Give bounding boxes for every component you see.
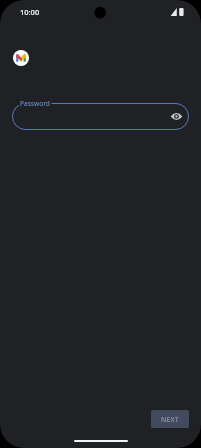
button[interactable]: Show password xyxy=(169,109,184,124)
staticText: 10:00 xyxy=(20,7,40,17)
staticText: Password xyxy=(20,99,50,108)
staticText: NEXT xyxy=(161,415,179,424)
button[interactable]: NEXT xyxy=(151,410,189,428)
button[interactable]: Show password xyxy=(12,103,189,130)
